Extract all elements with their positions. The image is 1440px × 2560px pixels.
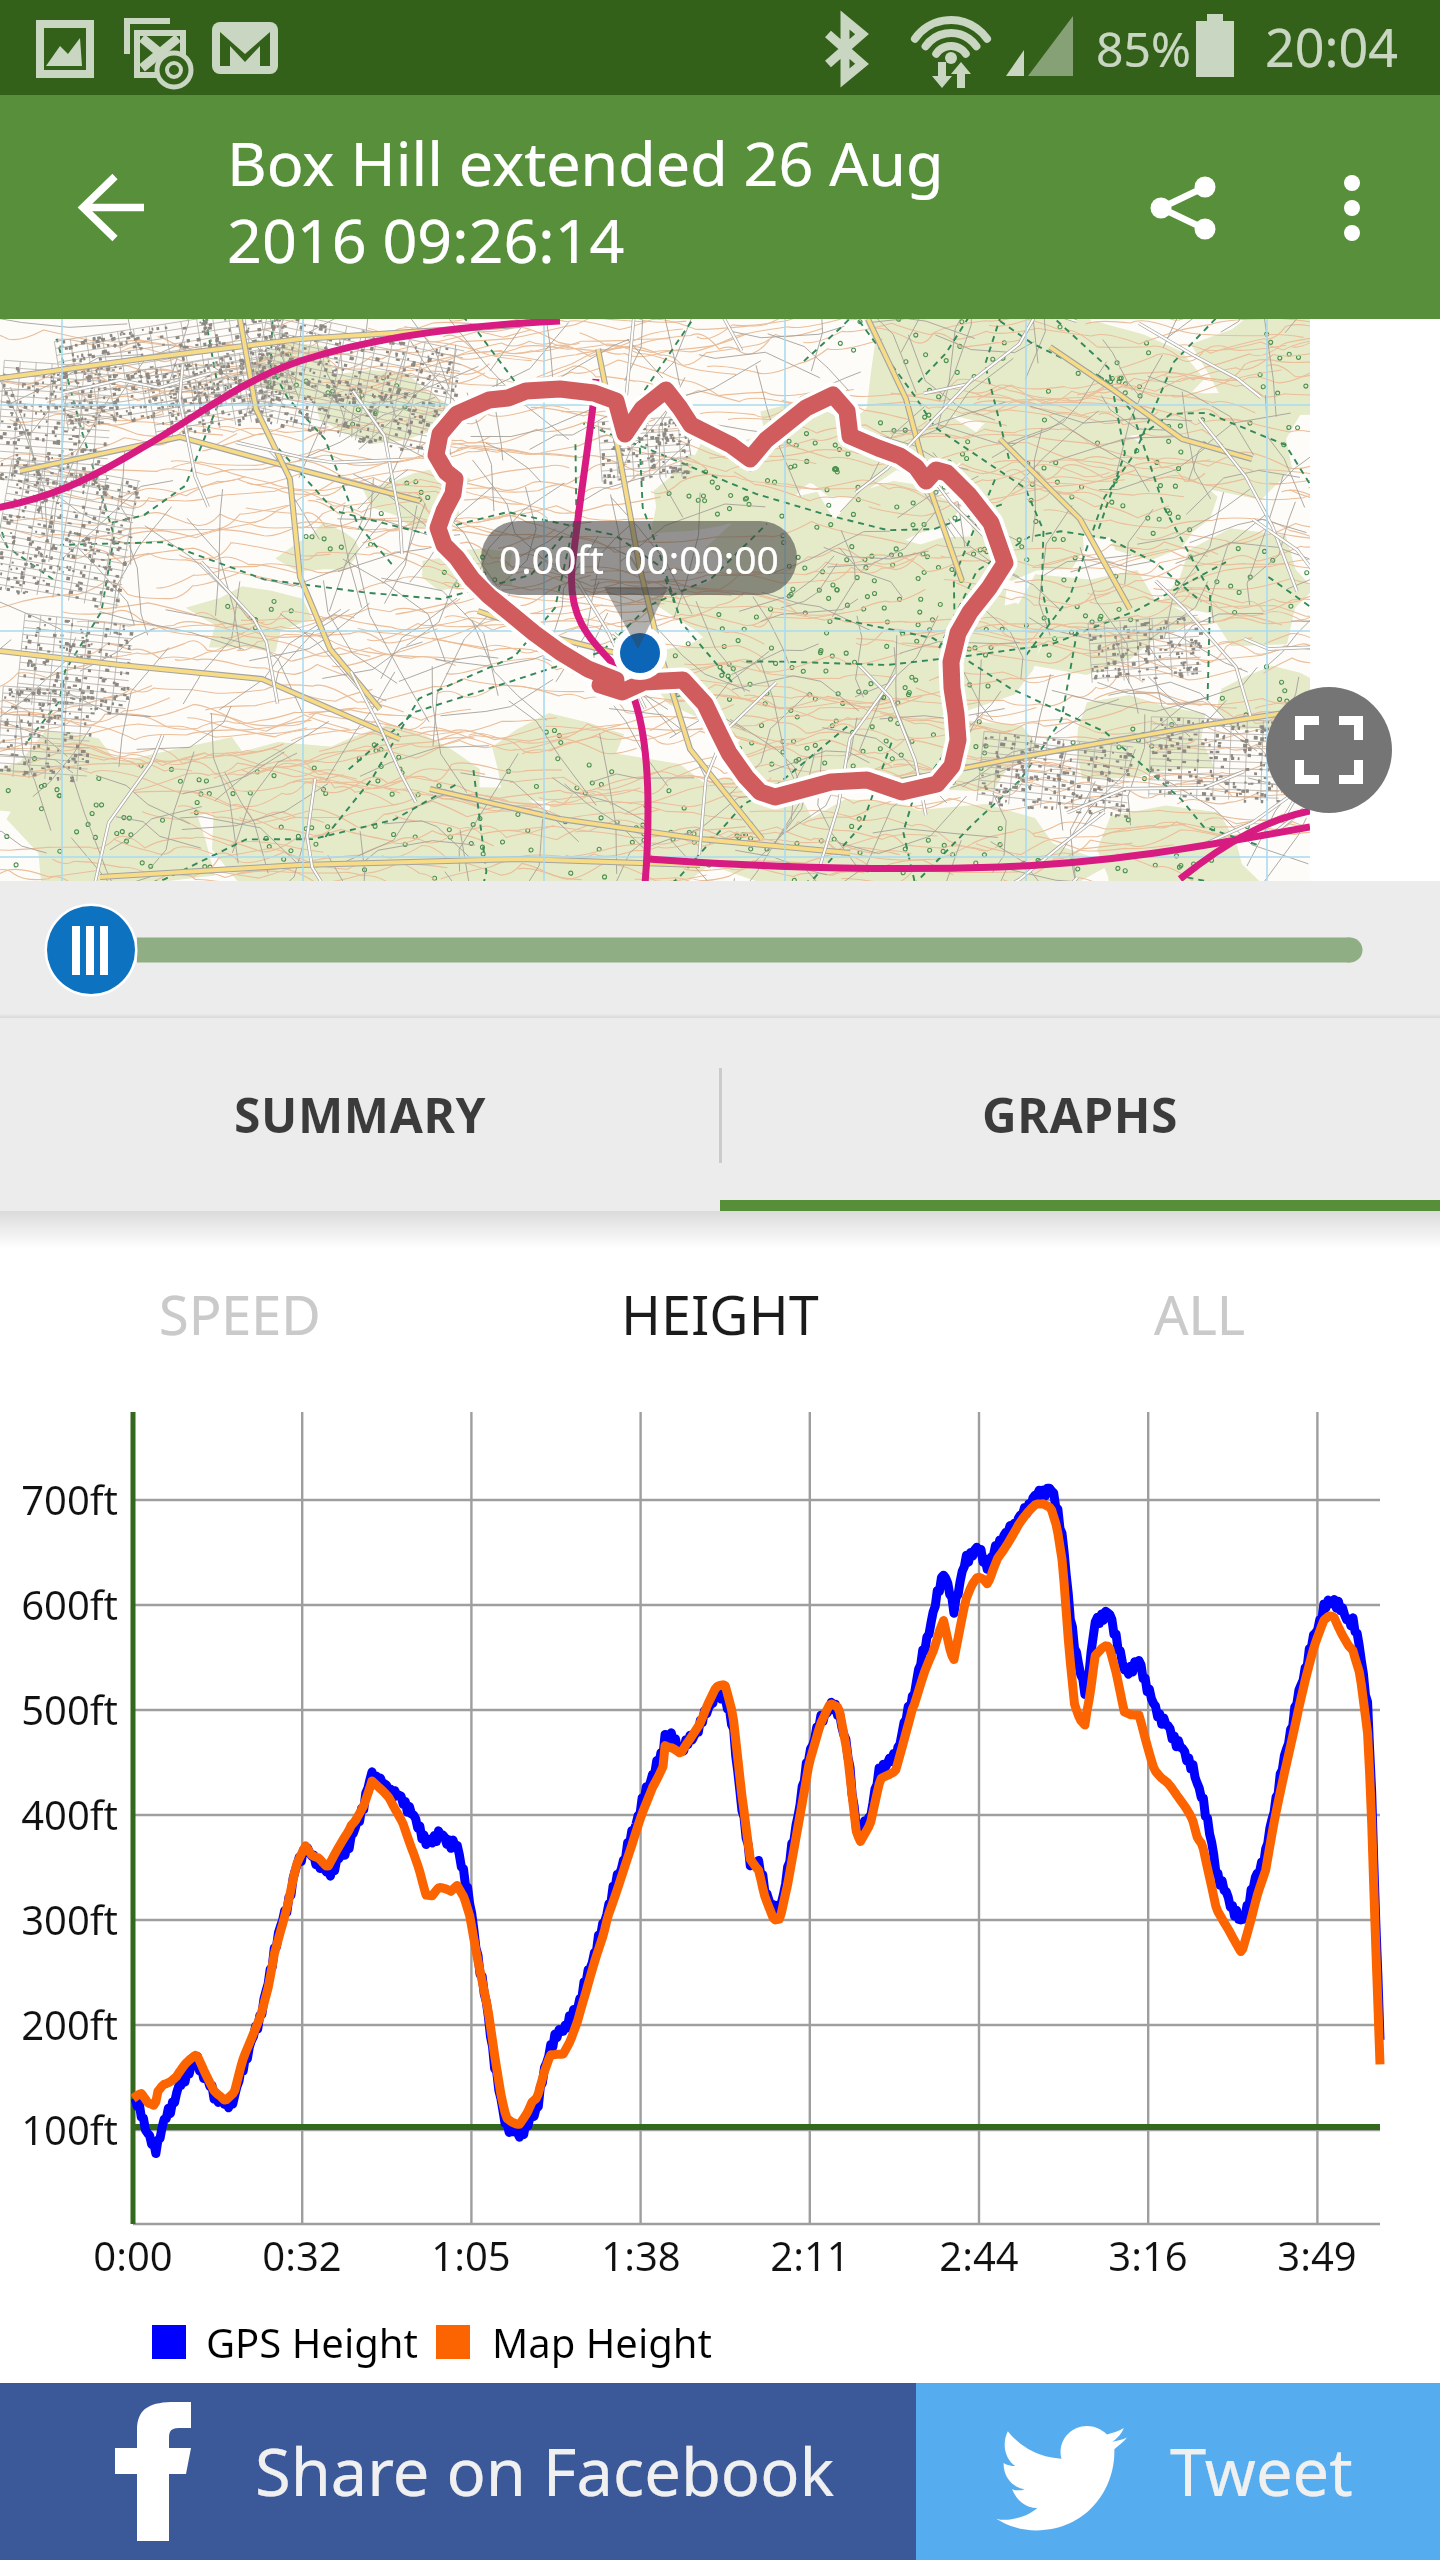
button[interactable]: Tweet xyxy=(916,2383,1440,2560)
staticText: 0:00 xyxy=(33,2228,233,2282)
staticText: 700ft xyxy=(0,1472,118,1526)
staticText: SUMMARY xyxy=(234,1082,487,1147)
button[interactable]: Playback position xyxy=(44,902,138,996)
staticText: Share on Facebook xyxy=(255,2427,835,2516)
button[interactable]: Share xyxy=(1086,133,1236,283)
staticText: GRAPHS xyxy=(982,1082,1179,1147)
staticText: 3:16 xyxy=(1048,2228,1248,2282)
staticText: 2:44 xyxy=(879,2228,1079,2282)
staticText: 300ft xyxy=(0,1892,118,1946)
staticText: 1:05 xyxy=(371,2228,571,2282)
staticText: 2:11 xyxy=(710,2228,910,2282)
staticText: Box Hill extended 26 Aug 2016 09:26:14 xyxy=(227,121,944,281)
staticText: 0:32 xyxy=(202,2228,402,2282)
button[interactable]: SPEED xyxy=(0,1211,480,1400)
staticText: SPEED xyxy=(159,1277,321,1351)
staticText: Map Height xyxy=(492,2315,712,2369)
button[interactable]: HEIGHT xyxy=(480,1211,960,1400)
staticText: 3:49 xyxy=(1217,2228,1417,2282)
staticText: 20:04 xyxy=(1265,11,1398,82)
staticText: 100ft xyxy=(0,2102,118,2156)
button[interactable]: GRAPHS xyxy=(720,1018,1440,1211)
button[interactable]: SUMMARY xyxy=(0,1018,720,1211)
staticText: 400ft xyxy=(0,1787,118,1841)
button[interactable]: Share on Facebook xyxy=(0,2383,916,2560)
button[interactable]: Seek xyxy=(137,921,1365,977)
staticText: HEIGHT xyxy=(621,1277,819,1351)
button[interactable]: Full screen map xyxy=(1266,687,1392,813)
staticText: Tweet xyxy=(1170,2427,1353,2516)
staticText: 85% xyxy=(1096,16,1191,81)
staticText: 0.00ft 00:00:00 xyxy=(499,532,779,585)
button[interactable]: More options xyxy=(1277,133,1427,283)
button[interactable]: ALL xyxy=(960,1211,1440,1400)
staticText: 600ft xyxy=(0,1577,118,1631)
button[interactable]: Back xyxy=(32,112,192,272)
staticText: 200ft xyxy=(0,1997,118,2051)
staticText: GPS Height xyxy=(206,2315,418,2369)
staticText: ALL xyxy=(1154,1277,1246,1351)
staticText: 1:38 xyxy=(541,2228,741,2282)
staticText: 500ft xyxy=(0,1682,118,1736)
